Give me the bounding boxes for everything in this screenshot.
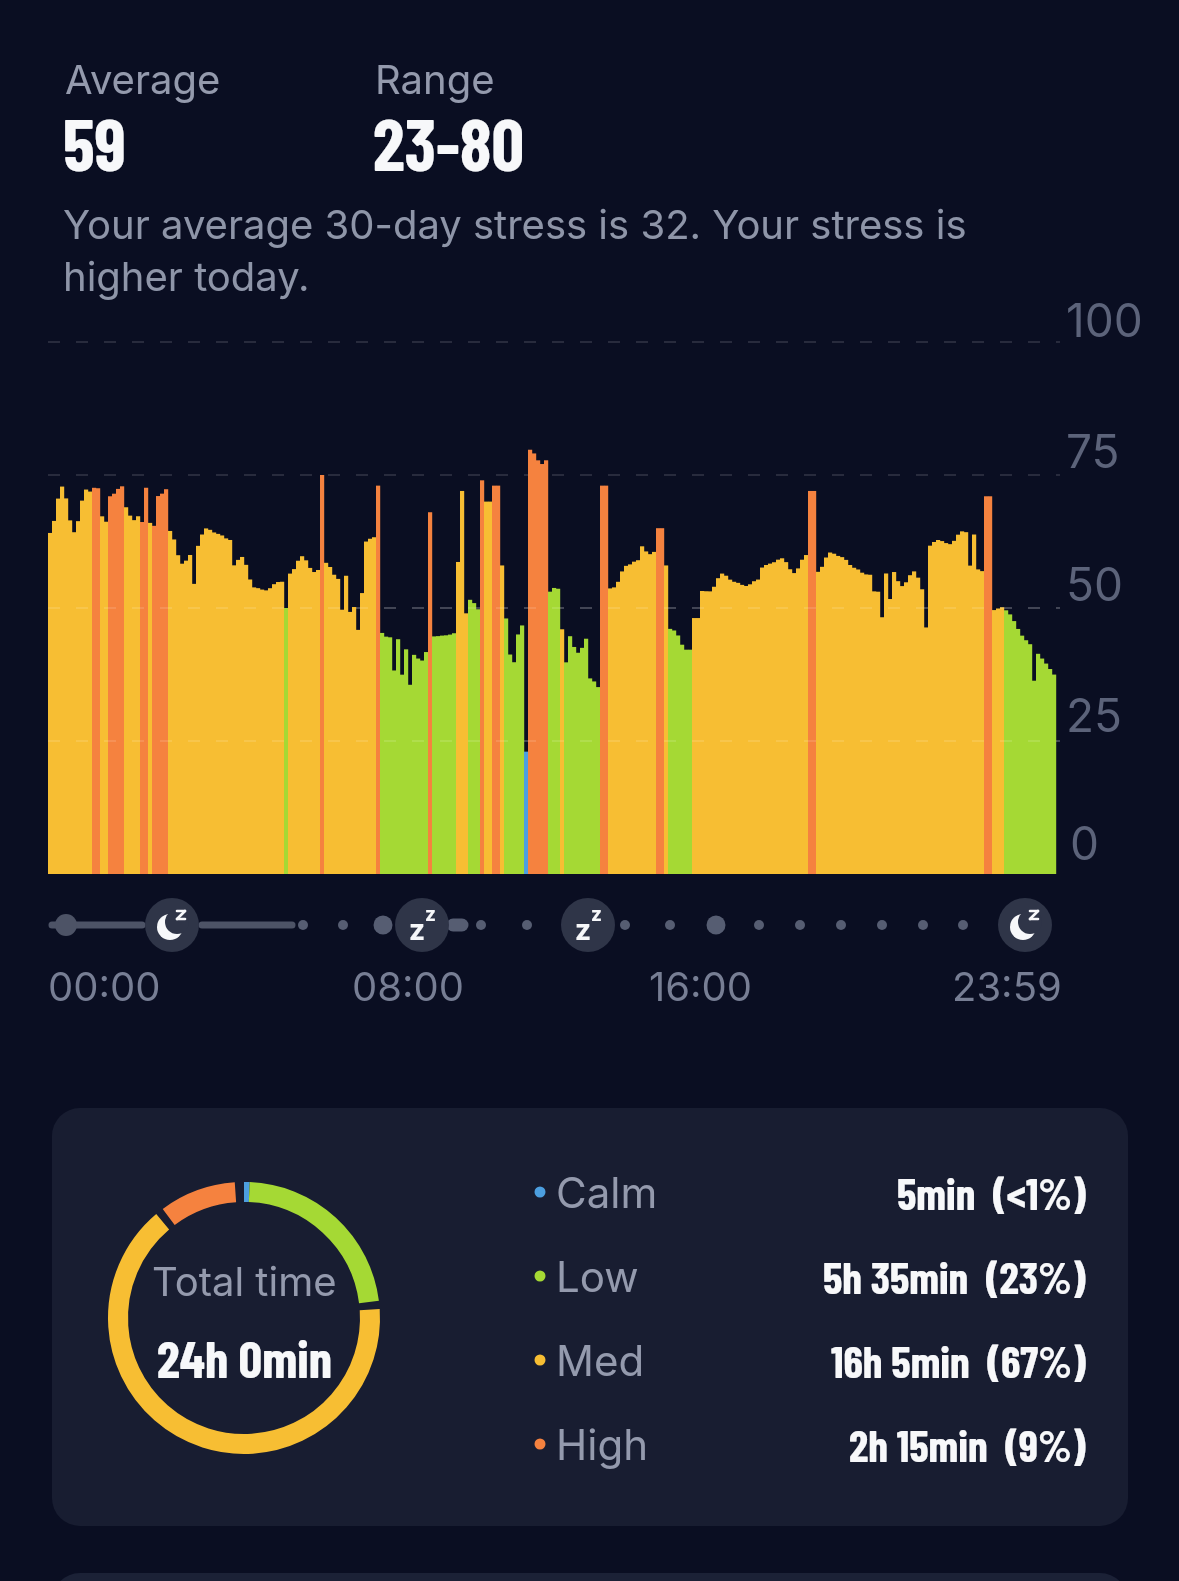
- staticText: 59: [63, 99, 126, 185]
- staticText: Your average 30-day stress is 32. Your s…: [63, 200, 967, 300]
- staticText: zz: [575, 903, 602, 947]
- staticText: High: [556, 1419, 648, 1470]
- staticText: 5h 35min (23%): [823, 1250, 1086, 1303]
- staticText: zz: [409, 903, 436, 947]
- staticText: Calm: [556, 1167, 658, 1218]
- staticText: 2h 15min (9%): [849, 1418, 1086, 1471]
- button[interactable]: [52, 1573, 1128, 1581]
- staticText: Total time: [152, 1257, 337, 1305]
- staticText: 23:59: [952, 962, 1062, 1010]
- staticText: Low: [556, 1251, 639, 1302]
- staticText: 23-80: [373, 99, 525, 185]
- staticText: Med: [556, 1335, 645, 1386]
- staticText: Range: [375, 55, 495, 103]
- staticText: 25: [1066, 687, 1123, 743]
- button[interactable]: [52, 1108, 1128, 1526]
- staticText: 16:00: [649, 962, 753, 1010]
- staticText: 5min (<1%): [897, 1166, 1086, 1219]
- staticText: 50: [1066, 556, 1123, 612]
- staticText: 75: [1066, 423, 1120, 479]
- staticText: 00:00: [48, 962, 161, 1010]
- staticText: 0: [1070, 815, 1100, 871]
- staticText: 100: [1066, 292, 1143, 348]
- staticText: 08:00: [352, 962, 464, 1010]
- staticText: 16h 5min (67%): [831, 1334, 1086, 1387]
- staticText: 24h 0min: [157, 1326, 332, 1380]
- staticText: Average: [65, 55, 221, 103]
